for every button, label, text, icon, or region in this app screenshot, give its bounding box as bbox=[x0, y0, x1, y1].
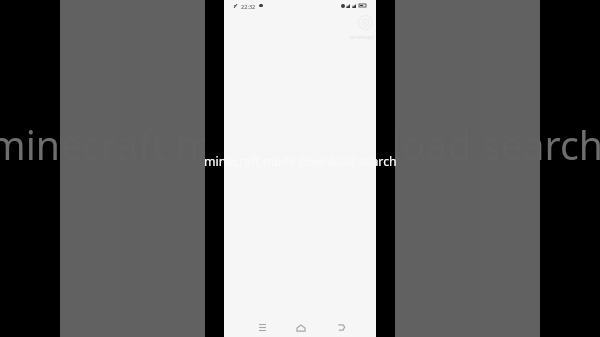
button[interactable]: Recent apps bbox=[255, 320, 269, 335]
button[interactable]: Back bbox=[334, 320, 348, 335]
staticText: whatsapp bbox=[350, 33, 374, 40]
staticText: minecraft mods download search bbox=[60, 118, 540, 171]
button[interactable]: Home bbox=[294, 320, 308, 335]
staticText: minecraft mods download search bbox=[204, 153, 397, 170]
staticText: minecraft mods download search bbox=[540, 118, 600, 171]
staticText: minecraft mods download search bbox=[0, 118, 60, 171]
staticText: 22:32 bbox=[241, 3, 256, 11]
